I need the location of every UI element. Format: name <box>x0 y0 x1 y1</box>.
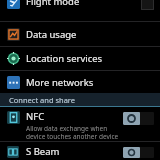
button[interactable]: More networks <box>0 71 160 93</box>
staticText: More networks <box>26 76 94 89</box>
button[interactable]: NFC toggle <box>123 112 154 125</box>
staticText: S Beam <box>26 145 60 158</box>
staticText: Data usage <box>26 28 77 41</box>
button[interactable]: S Beam toggle <box>123 147 154 158</box>
staticText: NFC <box>26 110 45 123</box>
button[interactable]: Flight mode checkbox <box>141 0 154 10</box>
button[interactable]: Data usage <box>0 22 160 46</box>
staticText: Location services <box>26 52 103 65</box>
button[interactable]: S Beam <box>0 142 160 160</box>
staticText: Allow data exchange when device touches … <box>26 124 120 139</box>
staticText: Connect and share <box>9 95 76 105</box>
button[interactable]: Location services <box>0 47 160 70</box>
button[interactable]: NFC <box>0 107 160 141</box>
button[interactable]: Flight mode <box>0 0 160 21</box>
staticText: Flight mode <box>26 0 80 8</box>
